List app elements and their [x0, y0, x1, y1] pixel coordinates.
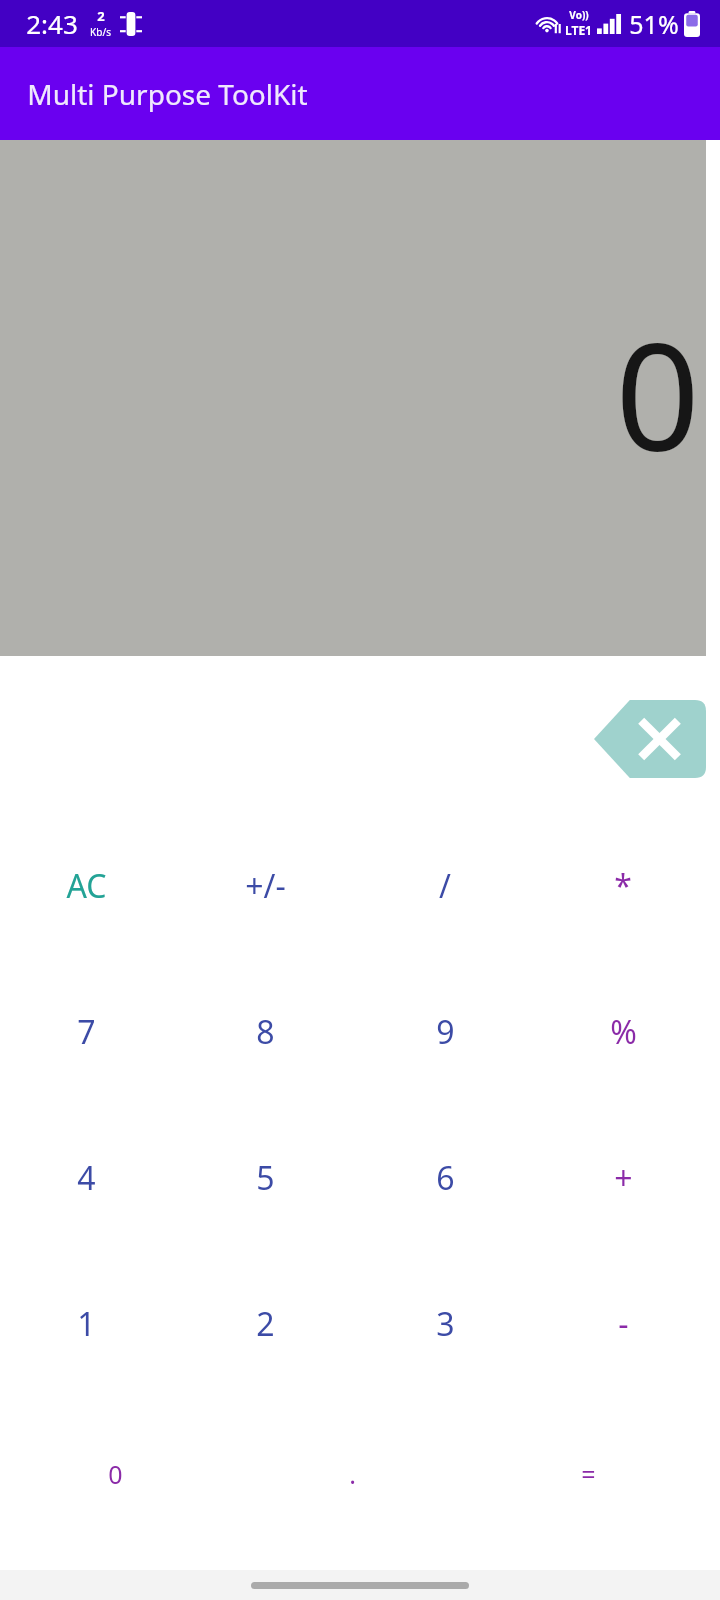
- staticText: 51%: [629, 7, 679, 41]
- button[interactable]: *: [535, 822, 711, 950]
- staticText: 2:43: [26, 6, 78, 41]
- button[interactable]: 7: [0, 968, 174, 1096]
- button[interactable]: -: [535, 1260, 711, 1388]
- staticText: 6: [436, 1156, 455, 1200]
- staticText: 0: [108, 1457, 123, 1491]
- staticText: %: [610, 1010, 637, 1054]
- staticText: 8: [256, 1010, 275, 1054]
- button[interactable]: AC: [0, 822, 174, 950]
- button[interactable]: /: [357, 822, 533, 950]
- button[interactable]: 0: [27, 1410, 203, 1538]
- staticText: 4: [77, 1156, 96, 1200]
- button[interactable]: 4: [0, 1114, 174, 1242]
- button[interactable]: +/-: [177, 822, 353, 950]
- button[interactable]: +: [535, 1114, 711, 1242]
- button[interactable]: 6: [357, 1114, 533, 1242]
- button[interactable]: %: [535, 968, 711, 1096]
- staticText: 3: [436, 1302, 455, 1346]
- button[interactable]: 5: [177, 1114, 353, 1242]
- staticText: Multi Purpose ToolKit: [27, 75, 308, 113]
- button[interactable]: 9: [357, 968, 533, 1096]
- staticText: *: [614, 864, 632, 908]
- button[interactable]: =: [500, 1410, 676, 1538]
- button[interactable]: 3: [357, 1260, 533, 1388]
- staticText: +: [614, 1156, 633, 1200]
- staticText: .: [349, 1457, 356, 1491]
- button[interactable]: Backspace: [594, 700, 706, 778]
- staticText: 2: [256, 1302, 275, 1346]
- staticText: -: [618, 1302, 629, 1346]
- staticText: 9: [436, 1010, 455, 1054]
- staticText: AC: [66, 864, 107, 908]
- staticText: Vo)): [569, 8, 589, 22]
- staticText: 0: [615, 293, 700, 495]
- staticText: 2: [97, 7, 105, 25]
- staticText: LTE1: [565, 22, 592, 38]
- staticText: =: [581, 1457, 596, 1491]
- staticText: 5: [256, 1156, 275, 1200]
- staticText: 7: [77, 1010, 96, 1054]
- button[interactable]: .: [264, 1410, 440, 1538]
- staticText: Kb/s: [90, 25, 111, 39]
- button[interactable]: Multi Purpose ToolKit: [0, 47, 720, 140]
- button[interactable]: 2: [177, 1260, 353, 1388]
- staticText: 1: [77, 1302, 96, 1346]
- staticText: /: [439, 864, 451, 908]
- button[interactable]: 8: [177, 968, 353, 1096]
- staticText: +/-: [245, 864, 286, 908]
- button[interactable]: 1: [0, 1260, 174, 1388]
